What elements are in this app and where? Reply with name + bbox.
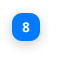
staticText: 8	[22, 18, 30, 36]
